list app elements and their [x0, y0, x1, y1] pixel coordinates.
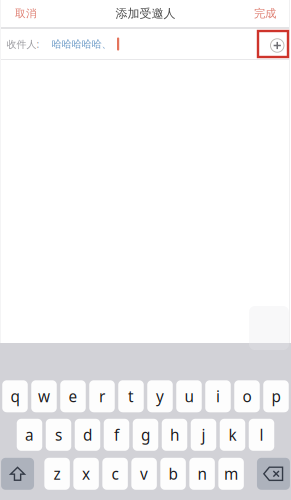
button[interactable]: c: [102, 458, 128, 490]
button[interactable]: Shift: [1, 458, 34, 490]
staticText: i: [216, 386, 220, 407]
button[interactable]: y: [147, 380, 173, 412]
staticText: j: [201, 424, 205, 445]
staticText: w: [38, 386, 50, 407]
button[interactable]: s: [46, 419, 71, 451]
staticText: q: [10, 386, 19, 407]
staticText: x: [82, 463, 90, 484]
staticText: l: [259, 424, 263, 445]
button[interactable]: q: [2, 380, 28, 412]
button[interactable]: n: [189, 458, 215, 490]
button[interactable]: Add recipient: [270, 36, 284, 52]
button[interactable]: x: [73, 458, 99, 490]
button[interactable]: r: [89, 380, 115, 412]
staticText: n: [198, 463, 207, 484]
button[interactable]: o: [234, 380, 260, 412]
staticText: s: [55, 424, 62, 445]
staticText: o: [242, 386, 251, 407]
button[interactable]: p: [263, 380, 289, 412]
staticText: p: [271, 386, 280, 407]
staticText: r: [99, 386, 105, 407]
staticText: c: [112, 463, 119, 484]
button[interactable]: m: [218, 458, 244, 490]
button[interactable]: w: [31, 380, 57, 412]
staticText: m: [224, 463, 238, 484]
staticText: 取消: [15, 7, 37, 20]
staticText: a: [25, 424, 34, 445]
staticText: f: [114, 424, 119, 445]
staticText: t: [128, 386, 134, 407]
button[interactable]: f: [104, 419, 129, 451]
staticText: e: [68, 386, 77, 407]
button[interactable]: Delete: [257, 458, 290, 490]
staticText: d: [83, 424, 92, 445]
staticText: z: [54, 463, 61, 484]
staticText: 完成: [254, 6, 276, 21]
button[interactable]: e: [60, 380, 86, 412]
staticText: v: [140, 463, 148, 484]
button[interactable]: k: [220, 419, 245, 451]
staticText: 收件人:: [6, 37, 39, 51]
button[interactable]: i: [205, 380, 231, 412]
button[interactable]: 取消: [0, 0, 52, 27]
staticText: 哈哈哈哈哈、: [51, 37, 111, 50]
button[interactable]: u: [176, 380, 202, 412]
button[interactable]: t: [118, 380, 144, 412]
button[interactable]: j: [191, 419, 216, 451]
staticText: b: [169, 463, 178, 484]
button[interactable]: g: [133, 419, 158, 451]
staticText: g: [141, 424, 150, 445]
button[interactable]: z: [44, 458, 70, 490]
button[interactable]: v: [131, 458, 157, 490]
button[interactable]: h: [162, 419, 187, 451]
staticText: y: [156, 386, 164, 407]
button[interactable]: b: [160, 458, 186, 490]
staticText: 添加受邀人: [115, 6, 175, 21]
staticText: h: [170, 424, 179, 445]
button[interactable]: d: [75, 419, 100, 451]
button[interactable]: a: [17, 419, 42, 451]
staticText: k: [228, 424, 236, 445]
staticText: u: [184, 386, 193, 407]
button[interactable]: 完成: [239, 0, 291, 27]
button[interactable]: l: [249, 419, 274, 451]
